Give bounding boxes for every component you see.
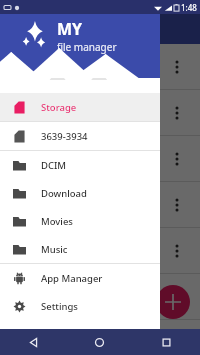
button[interactable]: App Manager (0, 264, 160, 292)
staticText: 1:48 (181, 2, 197, 13)
staticText: App Manager (41, 272, 103, 285)
button[interactable]: Recent apps (133, 329, 200, 355)
button[interactable]: Movies (0, 207, 160, 235)
staticText: Storage (41, 101, 77, 114)
button[interactable]: Add (156, 285, 190, 319)
button[interactable]: Download (0, 179, 160, 207)
button[interactable]: DCIM (0, 151, 160, 179)
button[interactable]: More options (167, 287, 187, 307)
staticText: Movies (41, 215, 73, 228)
staticText: DCIM (41, 159, 67, 172)
staticText: 3639-3934 (41, 130, 88, 143)
staticText: Music (41, 243, 68, 256)
button[interactable]: More options (167, 195, 187, 215)
button[interactable]: Storage (0, 93, 160, 121)
button[interactable]: More options (167, 103, 187, 123)
button[interactable]: More options (167, 149, 187, 169)
staticText: MY (57, 18, 83, 40)
staticText: Download (41, 187, 87, 200)
button[interactable]: Music (0, 235, 160, 263)
button[interactable]: 3639-3934 (0, 122, 160, 150)
button[interactable]: Back (0, 329, 66, 355)
button[interactable]: More options (167, 57, 187, 77)
button[interactable]: Home (66, 329, 133, 355)
button[interactable]: More options (167, 241, 187, 261)
staticText: Settings (41, 300, 78, 313)
staticText: file manager (57, 40, 117, 54)
button[interactable]: Settings (0, 292, 160, 320)
